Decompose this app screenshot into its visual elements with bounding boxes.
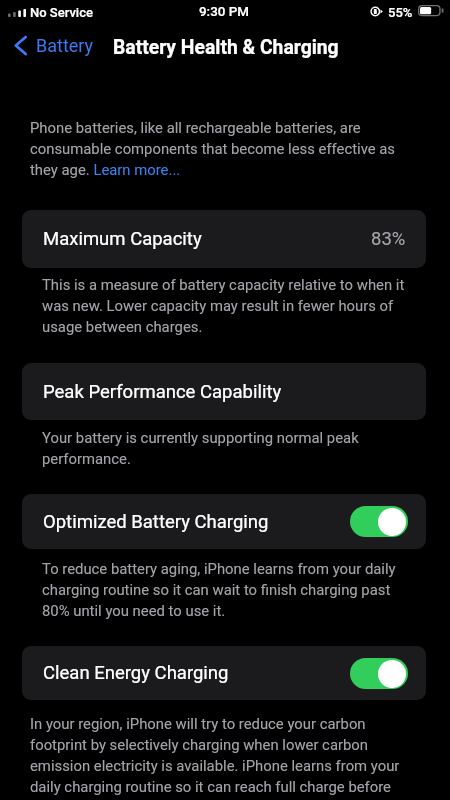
staticText: No Service — [30, 5, 93, 20]
staticText: 55% — [388, 5, 413, 20]
staticText: Clean Energy Charging — [43, 662, 229, 684]
staticText: Maximum Capacity — [43, 228, 202, 250]
staticText: Battery Health & Charging — [113, 36, 339, 59]
button[interactable]: Optimized Battery Charging — [22, 494, 426, 549]
staticText: Peak Performance Capability — [43, 381, 282, 403]
button[interactable]: Toggle switch, on — [350, 658, 408, 689]
staticText: In your region, iPhone will try to reduc… — [30, 715, 400, 796]
button[interactable]: Peak Performance Capability — [22, 363, 426, 420]
staticText: Your battery is currently supporting nor… — [42, 429, 359, 468]
staticText: 9:30 PM — [199, 4, 250, 20]
staticText: This is a measure of battery capacity re… — [42, 276, 405, 336]
staticText: Optimized Battery Charging — [43, 511, 269, 533]
staticText: Battery — [36, 35, 94, 56]
button[interactable]: Battery — [6, 30, 102, 61]
button[interactable]: Maximum Capacity — [22, 210, 426, 268]
staticText: To reduce battery aging, iPhone learns f… — [42, 560, 396, 620]
staticText: Phone batteries, like all rechargeable b… — [30, 119, 396, 179]
button[interactable]: Clean Energy Charging — [22, 646, 426, 700]
button[interactable]: Toggle switch, on — [350, 506, 408, 537]
staticText: 83% — [371, 228, 406, 250]
